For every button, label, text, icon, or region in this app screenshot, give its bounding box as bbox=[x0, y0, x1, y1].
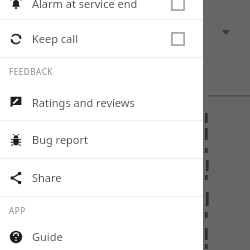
staticText: Alarm at service end bbox=[32, 0, 138, 11]
staticText: Ratings and reviews bbox=[32, 95, 135, 110]
button[interactable]: Keep call bbox=[0, 20, 203, 57]
button[interactable]: Ratings and reviews bbox=[0, 84, 203, 120]
button[interactable]: Guide bbox=[0, 223, 203, 250]
staticText: Guide bbox=[32, 229, 63, 244]
button[interactable]: Bug report bbox=[0, 121, 203, 158]
staticText: FEEDBACK bbox=[9, 66, 53, 77]
button[interactable]: Share bbox=[0, 159, 203, 196]
staticText: APP bbox=[9, 205, 26, 216]
button[interactable]: Alarm at service end bbox=[0, 0, 203, 19]
staticText: Share bbox=[32, 170, 62, 185]
staticText: Keep call bbox=[32, 31, 78, 46]
staticText: Bug report bbox=[32, 132, 89, 147]
